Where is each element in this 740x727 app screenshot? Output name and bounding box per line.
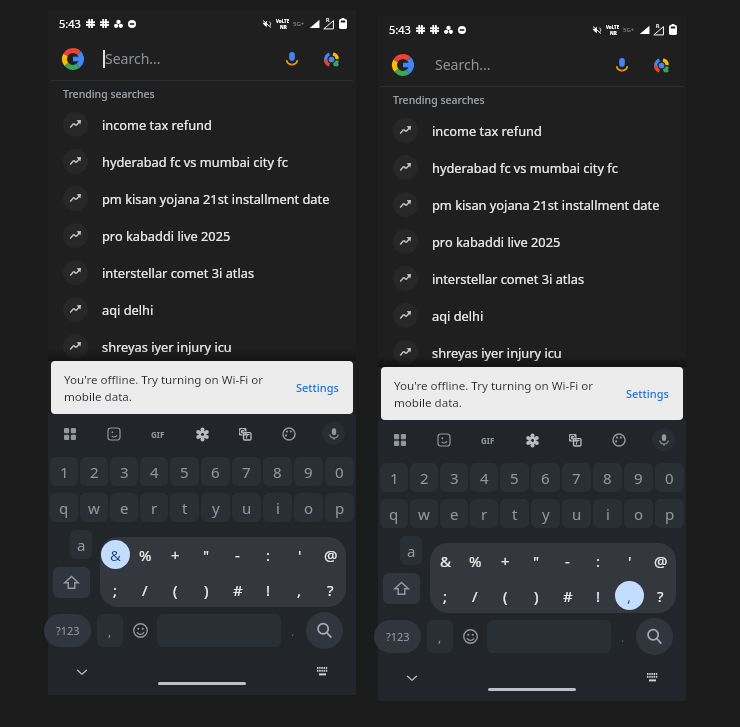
button[interactable]: a: [70, 530, 92, 559]
button[interactable]: q: [380, 499, 408, 528]
button[interactable]: ?123: [44, 614, 91, 647]
button[interactable]: +: [490, 543, 521, 578]
button[interactable]: y: [531, 499, 560, 528]
button[interactable]: shreyas iyer injury icu: [378, 334, 686, 371]
button[interactable]: &: [100, 537, 130, 572]
button[interactable]: Switch keyboard: [312, 662, 332, 682]
button[interactable]: 4: [140, 457, 168, 486]
button[interactable]: ): [191, 572, 222, 607]
button[interactable]: GIF: [477, 429, 499, 451]
button[interactable]: 3: [440, 463, 468, 492]
button[interactable]: 7: [232, 457, 261, 486]
button[interactable]: 6: [531, 463, 560, 492]
button[interactable]: o: [624, 499, 653, 528]
button[interactable]: 9: [624, 463, 653, 492]
button[interactable]: 0: [655, 463, 684, 492]
button[interactable]: 8: [263, 457, 292, 486]
button[interactable]: ,: [97, 614, 123, 647]
button[interactable]: i: [593, 499, 622, 528]
button[interactable]: ,: [427, 620, 453, 653]
button[interactable]: 1: [380, 463, 408, 492]
button[interactable]: Apps: [59, 423, 81, 445]
button[interactable]: ;: [100, 572, 130, 607]
button[interactable]: t: [500, 499, 529, 528]
button[interactable]: Stickers: [103, 423, 125, 445]
button[interactable]: ?123: [374, 620, 421, 653]
button[interactable]: :: [583, 543, 614, 578]
button[interactable]: 7: [562, 463, 591, 492]
button[interactable]: hyderabad fc vs mumbai city fc: [378, 149, 686, 186]
button[interactable]: 2: [80, 457, 108, 486]
button[interactable]: Voice input: [652, 428, 675, 451]
button[interactable]: 3: [110, 457, 138, 486]
button[interactable]: GIF: [147, 423, 169, 445]
button[interactable]: ;: [430, 578, 460, 613]
button[interactable]: ?: [645, 578, 676, 613]
button[interactable]: aqi delhi: [378, 297, 686, 334]
button[interactable]: hyderabad fc vs mumbai city fc: [48, 143, 356, 180]
button[interactable]: q: [50, 493, 78, 522]
button[interactable]: #: [552, 578, 583, 613]
button[interactable]: Hide keyboard: [72, 662, 92, 682]
button[interactable]: income tax refund: [378, 112, 686, 149]
button[interactable]: 4: [470, 463, 498, 492]
button[interactable]: Switch keyboard: [642, 668, 662, 688]
button[interactable]: e: [440, 499, 468, 528]
button[interactable]: %: [130, 537, 160, 572]
button[interactable]: bihar election date: [378, 371, 686, 408]
button[interactable]: Settings: [191, 423, 213, 445]
button[interactable]: u: [232, 493, 261, 522]
button[interactable]: ?: [315, 572, 346, 607]
button[interactable]: 5: [500, 463, 529, 492]
button[interactable]: bihar election date: [48, 365, 356, 402]
button[interactable]: Settings: [282, 380, 353, 395]
button[interactable]: Translate: [564, 429, 586, 451]
button[interactable]: Themes: [278, 423, 300, 445]
button[interactable]: 8: [593, 463, 622, 492]
button[interactable]: /: [130, 572, 160, 607]
button[interactable]: Stickers: [433, 429, 455, 451]
button[interactable]: Shift: [53, 567, 90, 598]
button[interactable]: 0: [325, 457, 354, 486]
button[interactable]: 6: [201, 457, 230, 486]
button[interactable]: pro kabaddi live 2025: [48, 217, 356, 254]
button[interactable]: Voice search: [279, 46, 305, 72]
button[interactable]: w: [410, 499, 438, 528]
button[interactable]: i: [263, 493, 292, 522]
button[interactable]: #: [222, 572, 253, 607]
button[interactable]: r: [140, 493, 168, 522]
button[interactable]: !: [253, 572, 284, 607]
button[interactable]: Translate: [234, 423, 256, 445]
button[interactable]: Apps: [389, 429, 411, 451]
button[interactable]: ': [284, 537, 315, 572]
button[interactable]: income tax refund: [48, 106, 356, 143]
button[interactable]: Emoji: [458, 620, 482, 653]
button[interactable]: ,: [614, 578, 645, 613]
button[interactable]: Settings: [612, 386, 683, 401]
button[interactable]: o: [294, 493, 323, 522]
button[interactable]: 1: [50, 457, 78, 486]
button[interactable]: shreyas iyer injury icu: [48, 328, 356, 365]
button[interactable]: -: [222, 537, 253, 572]
button[interactable]: ,: [284, 572, 315, 607]
button[interactable]: a: [400, 536, 422, 565]
button[interactable]: Search: [636, 618, 673, 655]
button[interactable]: !: [583, 578, 614, 613]
button[interactable]: r: [470, 499, 498, 528]
button[interactable]: t: [170, 493, 199, 522]
button[interactable]: p: [325, 493, 354, 522]
button[interactable]: 5: [170, 457, 199, 486]
button[interactable]: Google Lens: [648, 52, 674, 78]
button[interactable]: ): [521, 578, 552, 613]
button[interactable]: @: [315, 537, 346, 572]
button[interactable]: Settings: [521, 429, 543, 451]
button[interactable]: u: [562, 499, 591, 528]
button[interactable]: pm kisan yojana 21st installment date: [48, 180, 356, 217]
button[interactable]: Voice search: [609, 52, 635, 78]
button[interactable]: @: [645, 543, 676, 578]
button[interactable]: ': [614, 543, 645, 578]
button[interactable]: +: [160, 537, 191, 572]
